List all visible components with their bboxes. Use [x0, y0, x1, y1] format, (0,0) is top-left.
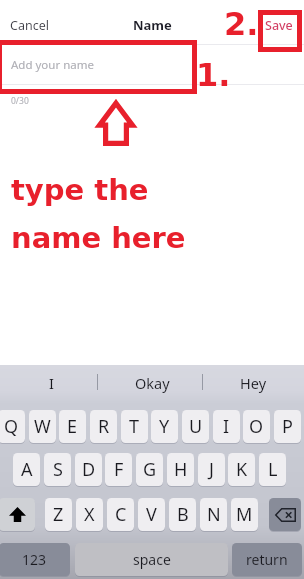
staticText: return [246, 550, 288, 569]
staticText: B [177, 502, 189, 527]
staticText: Add your name [11, 57, 94, 73]
button[interactable]: N [200, 498, 227, 531]
button[interactable]: Backspace [269, 498, 301, 531]
staticText: Q [4, 414, 19, 439]
staticText: 0/30 [11, 95, 29, 107]
button[interactable]: Y [151, 410, 178, 443]
button[interactable]: L [259, 453, 286, 486]
button[interactable]: B [169, 498, 196, 531]
staticText: S [53, 457, 63, 482]
staticText: D [82, 457, 96, 482]
button[interactable]: F [105, 453, 132, 486]
staticText: space [133, 550, 171, 569]
staticText: N [207, 502, 221, 527]
staticText: T [129, 414, 140, 439]
button[interactable]: U [182, 410, 209, 443]
staticText: Z [53, 502, 64, 527]
button[interactable]: D [75, 453, 102, 486]
button[interactable]: J [198, 453, 225, 486]
button[interactable]: C [107, 498, 134, 531]
button[interactable]: Okay [102, 365, 203, 401]
staticText: C [115, 502, 127, 527]
staticText: name here [11, 221, 186, 255]
staticText: Cancel [10, 17, 49, 34]
staticText: A [21, 457, 33, 482]
staticText: Okay [135, 373, 170, 393]
button[interactable]: A [13, 453, 40, 486]
button[interactable]: M [231, 498, 258, 531]
button[interactable]: X [76, 498, 103, 531]
button[interactable]: Add your name [0, 45, 304, 84]
button[interactable]: Z [45, 498, 72, 531]
staticText: K [236, 457, 248, 482]
staticText: M [236, 502, 253, 527]
button[interactable]: I [0, 365, 102, 401]
staticText: Name [133, 16, 172, 34]
staticText: I [223, 414, 230, 439]
staticText: W [34, 414, 51, 439]
staticText: R [98, 414, 110, 439]
button[interactable]: Q [0, 410, 25, 443]
staticText: 2. [224, 5, 259, 42]
button[interactable]: Cancel [10, 17, 49, 34]
staticText: H [174, 457, 188, 482]
button[interactable]: P [274, 410, 301, 443]
button[interactable]: space [75, 543, 228, 576]
staticText: Y [159, 414, 170, 439]
staticText: 123 [22, 550, 47, 569]
staticText: E [67, 414, 78, 439]
staticText: G [143, 457, 157, 482]
button[interactable]: V [138, 498, 165, 531]
button[interactable]: return [232, 543, 302, 576]
button[interactable]: O [243, 410, 270, 443]
button[interactable]: T [121, 410, 148, 443]
button[interactable]: 123 [0, 543, 70, 576]
button[interactable]: G [136, 453, 163, 486]
staticText: J [209, 457, 214, 482]
staticText: type the [11, 173, 149, 207]
staticText: V [146, 502, 157, 527]
button[interactable]: Hey [203, 365, 304, 401]
staticText: I [49, 373, 54, 393]
button[interactable]: K [228, 453, 255, 486]
button[interactable]: Shift [0, 498, 35, 531]
staticText: F [114, 457, 124, 482]
staticText: 1. [196, 56, 231, 93]
button[interactable]: R [90, 410, 117, 443]
button[interactable]: Save [265, 17, 293, 34]
staticText: Save [265, 17, 293, 34]
staticText: U [189, 414, 203, 439]
staticText: X [84, 502, 95, 527]
staticText: P [282, 414, 293, 439]
staticText: L [268, 457, 278, 482]
button[interactable]: W [29, 410, 56, 443]
button[interactable]: I [213, 410, 240, 443]
button[interactable]: H [167, 453, 194, 486]
staticText: O [249, 414, 264, 439]
button[interactable]: E [59, 410, 86, 443]
button[interactable]: S [44, 453, 71, 486]
staticText: Hey [240, 373, 267, 393]
